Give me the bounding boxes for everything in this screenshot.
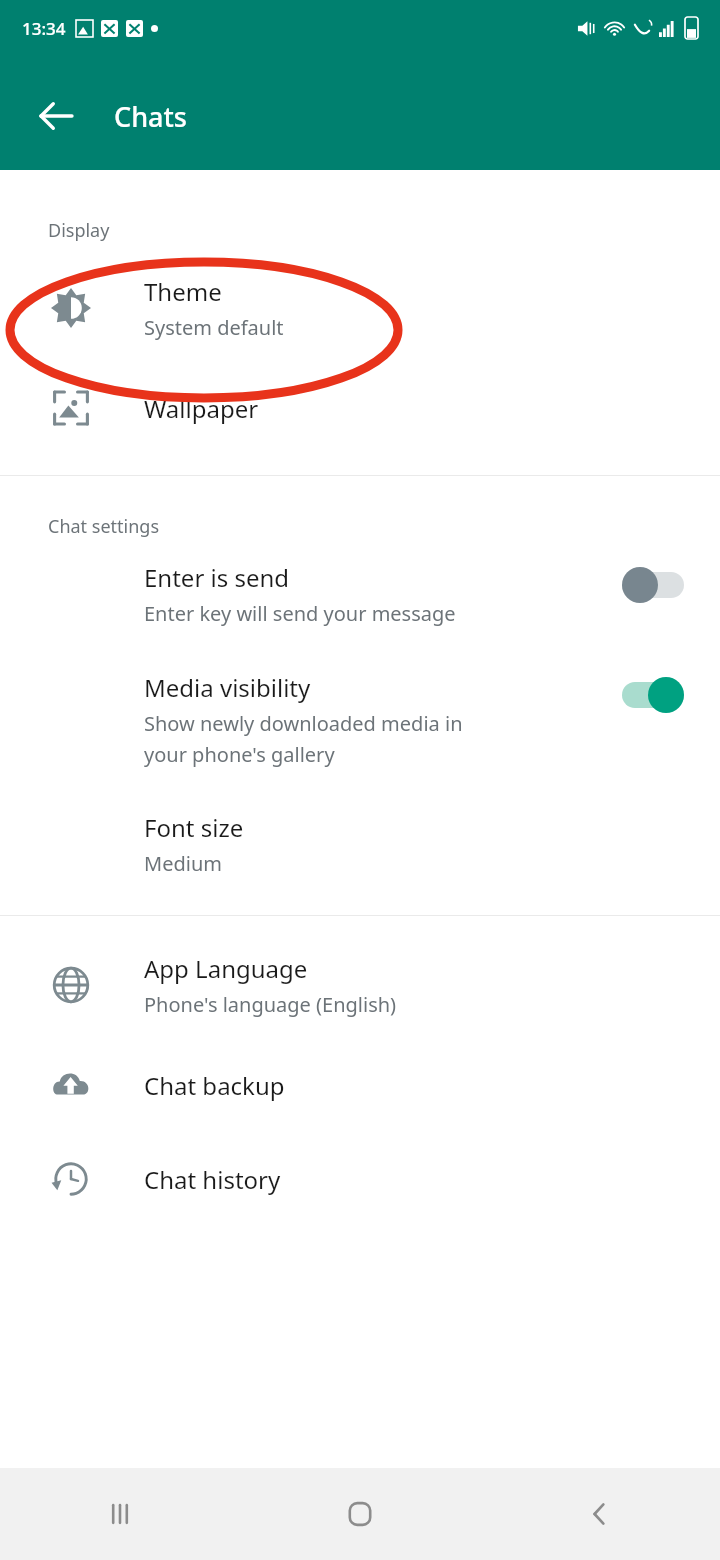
button[interactable]: Back	[26, 86, 86, 146]
button[interactable]: Media visibility	[0, 671, 720, 767]
staticText: Media visibility	[144, 671, 311, 704]
staticText: System default	[144, 314, 284, 341]
button[interactable]: Wallpaper	[0, 381, 720, 435]
staticText: App Language	[144, 952, 308, 985]
staticText: Chat history	[144, 1163, 281, 1196]
staticText: Enter is send	[144, 561, 290, 594]
staticText: Chat backup	[144, 1069, 285, 1102]
staticText: Theme	[144, 275, 222, 308]
button[interactable]: Theme	[0, 271, 720, 345]
button[interactable]: Recents	[0, 1468, 240, 1560]
button[interactable]: Font size	[0, 807, 720, 881]
button[interactable]: Home	[240, 1468, 480, 1560]
staticText: Phone's language (English)	[144, 991, 397, 1018]
button[interactable]: App Language	[0, 948, 720, 1022]
staticText: Font size	[144, 811, 244, 844]
staticText: Chats	[114, 98, 187, 135]
button[interactable]: Chat history	[0, 1152, 720, 1206]
button[interactable]: Enter is send	[0, 561, 720, 627]
staticText: Show newly downloaded media in your phon…	[144, 710, 463, 767]
staticText: 13:34	[22, 17, 66, 40]
button[interactable]: Chat backup	[0, 1058, 720, 1112]
staticText: Display	[48, 218, 110, 243]
staticText: Wallpaper	[144, 392, 259, 425]
button[interactable]: Back	[480, 1468, 720, 1560]
staticText: Chat settings	[48, 514, 160, 539]
staticText: Enter key will send your message	[144, 600, 456, 627]
staticText: Medium	[144, 850, 222, 877]
